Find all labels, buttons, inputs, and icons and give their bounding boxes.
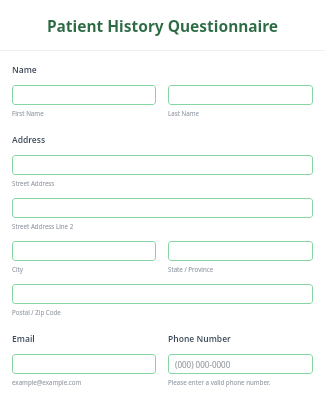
button[interactable]: Street Address Line 2 xyxy=(12,198,313,218)
staticText: Phone Number xyxy=(168,333,231,345)
button[interactable]: State / Province xyxy=(168,241,313,261)
button[interactable]: Please enter a valid phone number. xyxy=(168,354,313,374)
staticText: Name xyxy=(12,64,37,76)
staticText: (000) 000-0000 xyxy=(175,359,231,370)
button[interactable]: City xyxy=(12,241,156,261)
staticText: Please enter a valid phone number. xyxy=(168,378,271,386)
staticText: Last Name xyxy=(168,109,199,117)
staticText: City xyxy=(12,265,23,273)
button[interactable]: example@example.com xyxy=(12,354,156,374)
staticText: Postal / Zip Code xyxy=(12,308,61,316)
button[interactable]: Street Address xyxy=(12,155,313,175)
staticText: First Name xyxy=(12,109,44,117)
staticText: Street Address xyxy=(12,179,55,187)
button[interactable]: Postal / Zip Code xyxy=(12,284,313,304)
button[interactable]: Last Name xyxy=(168,85,313,105)
staticText: Street Address Line 2 xyxy=(12,222,74,230)
button[interactable]: First Name xyxy=(12,85,156,105)
staticText: example@example.com xyxy=(12,378,82,386)
staticText: State / Province xyxy=(168,265,214,273)
staticText: Patient History Questionnaire xyxy=(0,15,325,36)
staticText: Address xyxy=(12,134,46,146)
staticText: Email xyxy=(12,333,35,345)
